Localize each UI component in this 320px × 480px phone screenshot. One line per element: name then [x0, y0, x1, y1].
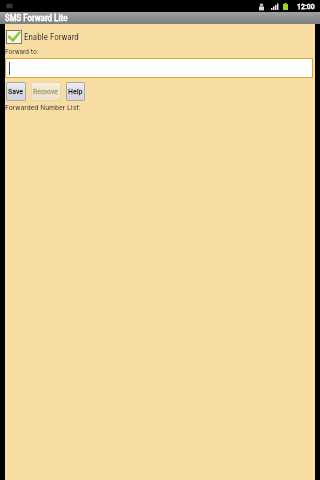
- staticText: Forward to:: [5, 47, 39, 56]
- staticText: 12:00: [297, 2, 315, 11]
- staticText: Save: [8, 87, 24, 96]
- other: Signal strength: [271, 3, 279, 10]
- button[interactable]: Save: [7, 83, 25, 100]
- button[interactable]: [6, 59, 312, 77]
- other: Notification: [5, 2, 14, 10]
- other: Storage: [259, 3, 264, 11]
- staticText: Enable Forward: [24, 32, 79, 43]
- button[interactable]: Enable Forward: [6, 29, 79, 45]
- staticText: SMS Forward Lite: [5, 13, 68, 24]
- button[interactable]: Help: [67, 83, 84, 100]
- staticText: Help: [68, 87, 83, 96]
- button[interactable]: Remove: [32, 83, 60, 100]
- other: Battery: [283, 3, 288, 10]
- button[interactable]: SMS Forward Lite: [0, 12, 320, 24]
- staticText: Remove: [33, 87, 59, 96]
- staticText: Forwarded Number List:: [5, 103, 81, 112]
